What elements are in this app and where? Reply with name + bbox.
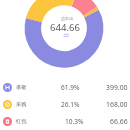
other: 红包 bbox=[3, 117, 12, 126]
staticText: 61.9% bbox=[61, 83, 80, 92]
staticText: 26.1% bbox=[61, 100, 80, 109]
staticText: 红包 bbox=[16, 118, 27, 125]
button[interactable]: 孝敬 bbox=[0, 79, 130, 96]
staticText: 168.00 bbox=[106, 100, 128, 109]
staticText: 总支出 bbox=[61, 16, 74, 21]
staticText: 10.3% bbox=[65, 117, 84, 126]
other: 孝敬 bbox=[3, 83, 12, 92]
button[interactable]: 红包 bbox=[0, 113, 130, 130]
button[interactable]: 采购 bbox=[0, 96, 130, 113]
staticText: 孝敬 bbox=[16, 84, 27, 91]
staticText: 66.66 bbox=[110, 117, 128, 126]
staticText: 644.66 bbox=[50, 21, 81, 34]
staticText: 采购 bbox=[16, 101, 27, 108]
other: 采购 bbox=[3, 100, 12, 109]
staticText: 399.00 bbox=[106, 83, 128, 92]
